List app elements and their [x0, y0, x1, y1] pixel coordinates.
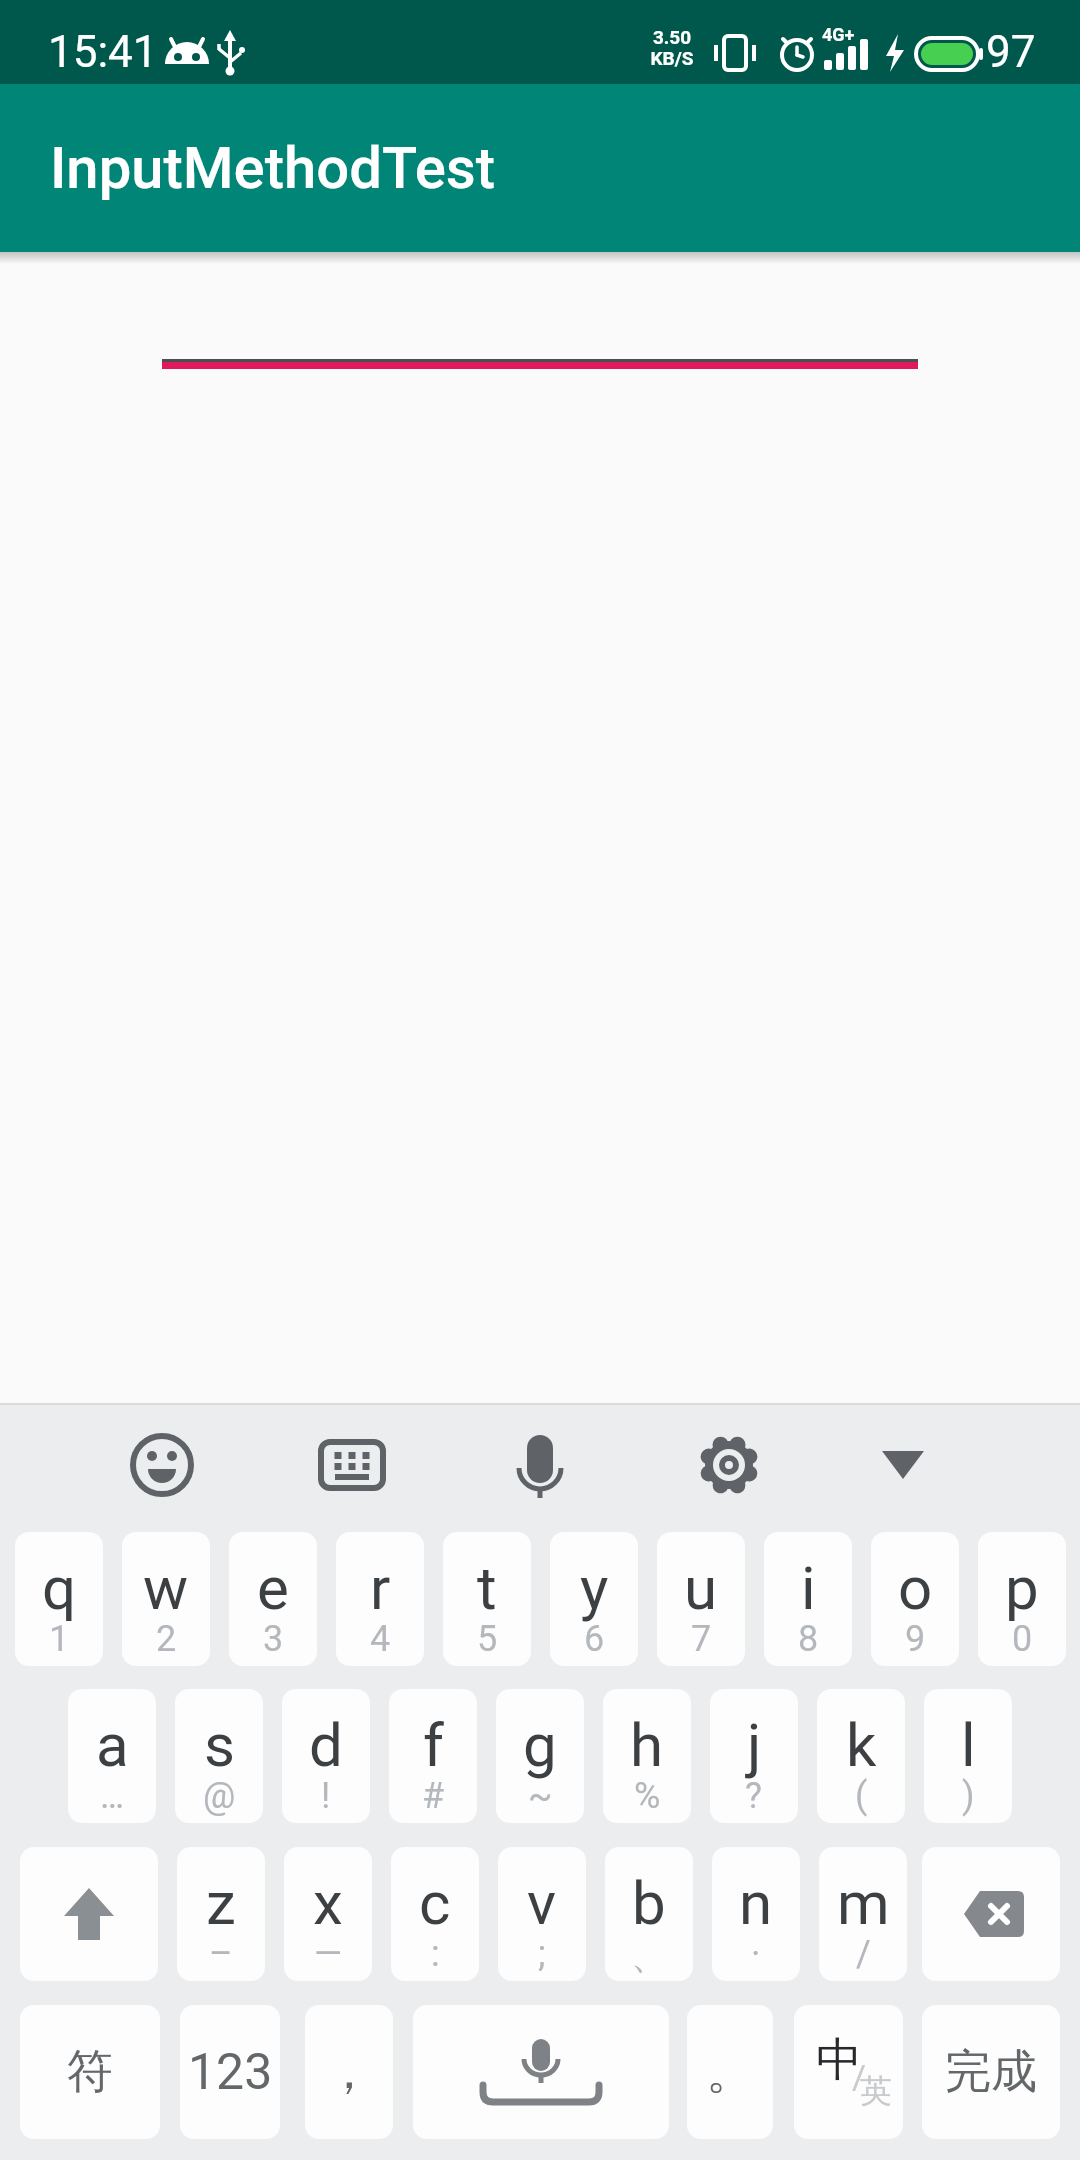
button[interactable]: x	[284, 1847, 372, 1981]
button[interactable]: q	[15, 1532, 103, 1666]
staticText: (	[855, 1775, 868, 1817]
staticText: ?	[745, 1775, 763, 1817]
button[interactable]: j	[710, 1689, 798, 1823]
button[interactable]: 。	[687, 2005, 773, 2139]
button[interactable]	[287, 1419, 417, 1519]
staticText: y	[580, 1553, 609, 1623]
button[interactable]: s	[175, 1689, 263, 1823]
staticText: /	[852, 2057, 867, 2097]
staticText: w	[143, 1553, 189, 1623]
staticText: 完成	[945, 2043, 1037, 2101]
button[interactable]: g	[496, 1689, 584, 1823]
staticText: o	[898, 1553, 933, 1623]
staticText: ;	[538, 1933, 546, 1975]
staticText: j	[747, 1710, 762, 1780]
staticText: 4	[370, 1618, 391, 1660]
staticText: c	[419, 1868, 451, 1938]
button[interactable]: v	[498, 1847, 586, 1981]
button[interactable]	[97, 1419, 227, 1519]
staticText: #	[422, 1775, 445, 1817]
staticText: /	[856, 1933, 871, 1975]
staticText: 4G+	[822, 24, 855, 45]
staticText: —	[314, 1933, 343, 1975]
button[interactable]: u	[657, 1532, 745, 1666]
staticText: !	[321, 1775, 331, 1817]
staticText: n	[739, 1868, 773, 1938]
staticText: z	[206, 1868, 236, 1938]
staticText: 5	[477, 1618, 498, 1660]
button[interactable]: z	[177, 1847, 265, 1981]
staticText: f	[423, 1710, 444, 1780]
staticText: e	[257, 1553, 289, 1623]
staticText: q	[42, 1553, 77, 1623]
button[interactable]: n	[712, 1847, 800, 1981]
staticText: s	[204, 1710, 235, 1780]
staticText: ·	[751, 1933, 761, 1975]
button[interactable]: 123	[180, 2005, 280, 2139]
staticText: 2	[156, 1618, 177, 1660]
button[interactable]: w	[122, 1532, 210, 1666]
staticText: k	[846, 1710, 877, 1780]
button[interactable]: t	[443, 1532, 531, 1666]
button[interactable]: a	[68, 1689, 156, 1823]
staticText: r	[370, 1553, 391, 1623]
button[interactable]: e	[229, 1532, 317, 1666]
button[interactable]: m	[819, 1847, 907, 1981]
staticText: 0	[1012, 1618, 1033, 1660]
button[interactable]: d	[282, 1689, 370, 1823]
button[interactable]: r	[336, 1532, 424, 1666]
staticText: 英	[860, 2071, 892, 2111]
button[interactable]: ，	[305, 2005, 393, 2139]
button[interactable]	[838, 1419, 968, 1519]
button[interactable]: h	[603, 1689, 691, 1823]
button[interactable]	[20, 1847, 158, 1981]
staticText: v	[527, 1868, 557, 1938]
staticText: 、	[631, 1933, 667, 1978]
staticText: 3.50 KB/S	[642, 26, 702, 69]
staticText: 8	[798, 1618, 819, 1660]
button[interactable]: 中	[794, 2005, 903, 2139]
staticText: 6	[584, 1618, 605, 1660]
staticText: p	[1005, 1553, 1039, 1623]
staticText: @	[203, 1775, 236, 1817]
staticText: 97	[986, 26, 1036, 78]
staticText: g	[523, 1710, 557, 1780]
staticText: a	[96, 1710, 129, 1780]
staticText: ，	[325, 2042, 373, 2102]
staticText: i	[801, 1553, 816, 1623]
staticText: InputMethodTest	[50, 134, 496, 202]
staticText: 符	[67, 2043, 113, 2101]
staticText: 15:41	[48, 26, 158, 78]
staticText: u	[684, 1553, 718, 1623]
staticText: d	[309, 1710, 343, 1780]
button[interactable]	[475, 1419, 605, 1519]
staticText: –	[209, 1933, 233, 1975]
staticText: 9	[905, 1618, 926, 1660]
button[interactable]: p	[978, 1532, 1066, 1666]
staticText: 。	[706, 2042, 754, 2102]
staticText: …	[100, 1775, 125, 1817]
staticText: x	[313, 1868, 343, 1938]
button[interactable]: b	[605, 1847, 693, 1981]
button[interactable]: c	[391, 1847, 479, 1981]
staticText: 1	[49, 1618, 70, 1660]
staticText: l	[961, 1710, 976, 1780]
button[interactable]: 符	[20, 2005, 160, 2139]
button[interactable]: l	[924, 1689, 1012, 1823]
staticText: m	[837, 1868, 890, 1938]
button[interactable]: f	[389, 1689, 477, 1823]
staticText: t	[477, 1553, 497, 1623]
button[interactable]	[664, 1419, 794, 1519]
button[interactable]	[922, 1847, 1060, 1981]
button[interactable]: y	[550, 1532, 638, 1666]
staticText: )	[962, 1775, 975, 1817]
button[interactable]: i	[764, 1532, 852, 1666]
button[interactable]: o	[871, 1532, 959, 1666]
button[interactable]: 完成	[922, 2005, 1060, 2139]
staticText: :	[431, 1933, 440, 1975]
button[interactable]: k	[817, 1689, 905, 1823]
staticText: b	[632, 1868, 666, 1938]
staticText: 123	[188, 2043, 273, 2102]
staticText: 7	[691, 1618, 712, 1660]
button[interactable]	[413, 2005, 669, 2139]
